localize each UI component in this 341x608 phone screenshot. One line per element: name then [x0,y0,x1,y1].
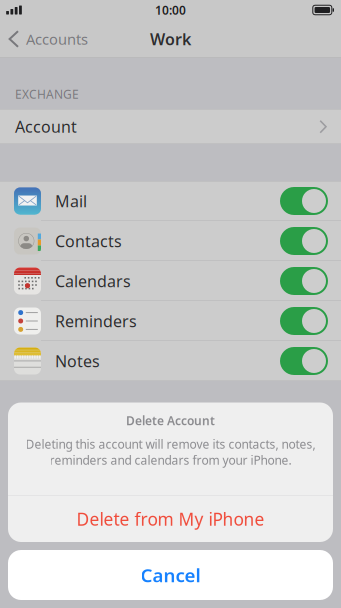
button[interactable]: Mail [0,181,341,221]
staticText: Deleting this account will remove its co… [25,436,315,452]
button[interactable]: Cancel [8,550,333,600]
button[interactable]: Notes [0,341,341,381]
button[interactable]: Accounts [0,20,96,58]
staticText: Work [150,28,191,50]
staticText: reminders and calendars from your iPhone… [49,452,291,468]
staticText: Account [15,116,77,137]
button[interactable]: Calendars [0,261,341,301]
staticText: Cancel [140,563,200,587]
button[interactable]: Account [0,109,341,144]
staticText: Accounts [26,29,88,49]
staticText: Mail [55,190,87,212]
staticText: Calendars [55,270,131,292]
button[interactable]: Reminders [0,301,341,341]
staticText: Contacts [55,230,122,252]
staticText: Notes [55,350,100,372]
staticText: 10:00 [155,2,186,18]
button[interactable]: Delete from My iPhone [8,496,333,542]
staticText: Reminders [55,310,137,332]
staticText: Delete from My iPhone [76,507,264,530]
staticText: EXCHANGE [15,86,79,102]
staticText: Delete Account [126,412,215,428]
button[interactable]: Contacts [0,221,341,261]
